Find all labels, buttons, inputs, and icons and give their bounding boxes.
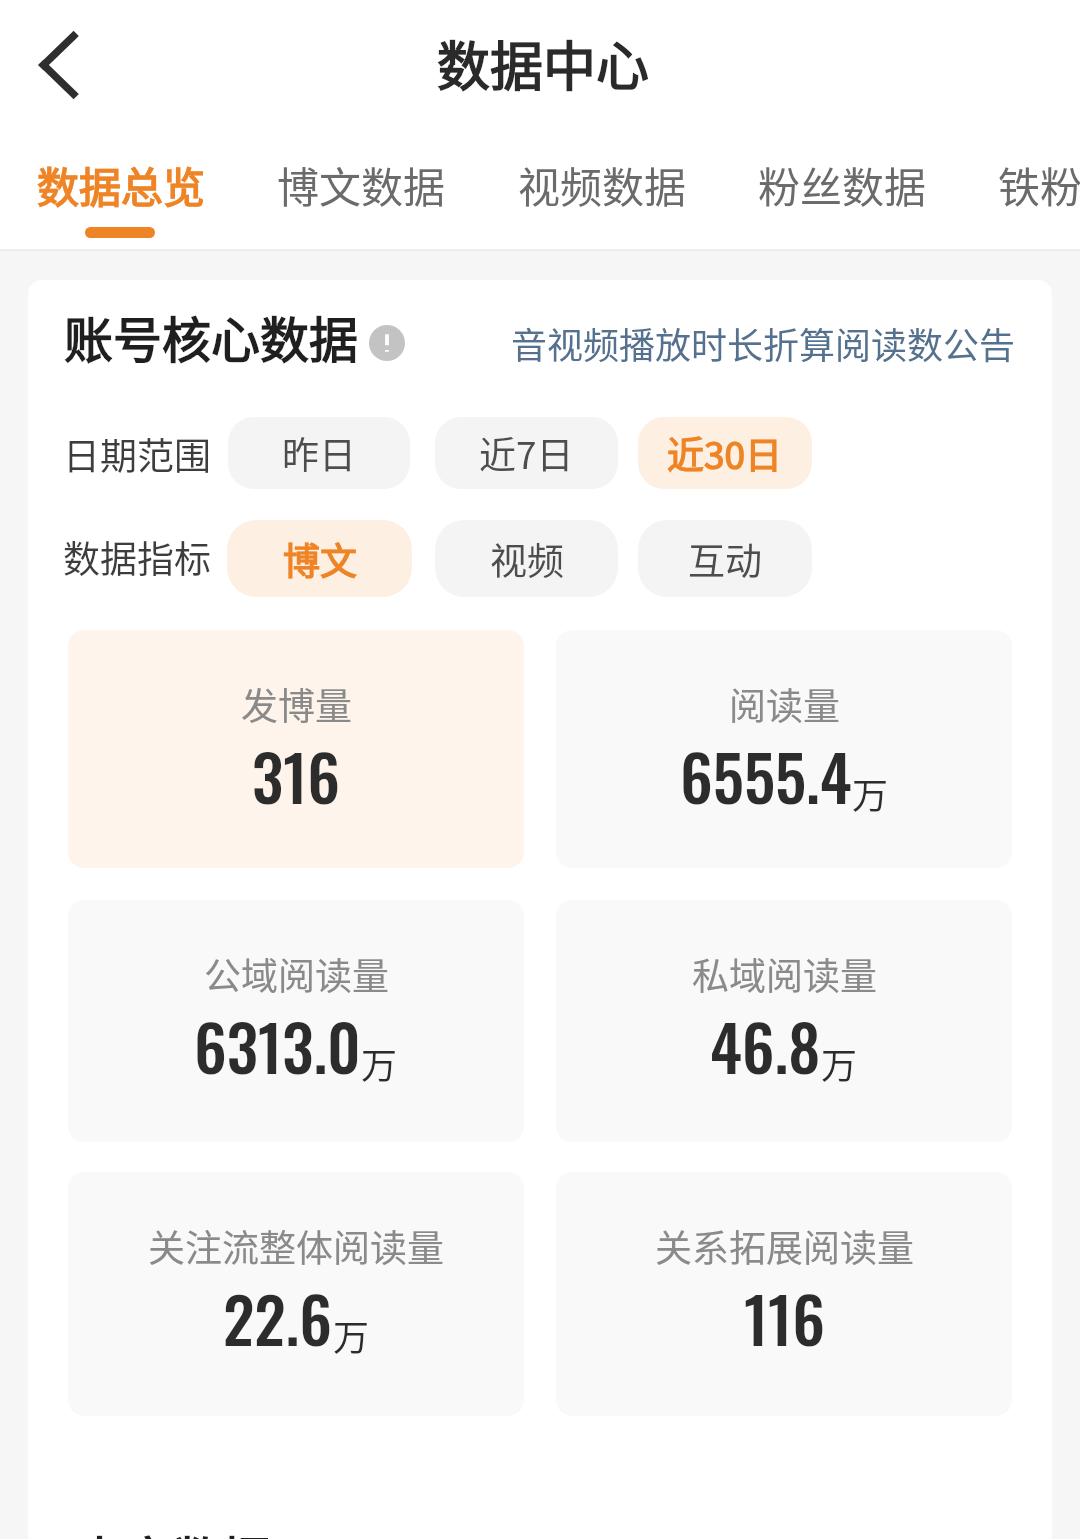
staticText: 互动: [688, 532, 762, 586]
button[interactable]: 视频数据: [518, 145, 686, 250]
button[interactable]: Back: [14, 16, 106, 116]
button[interactable]: 关注流整体阅读量: [68, 1172, 524, 1416]
staticText: 昨日: [282, 426, 356, 480]
staticText: 46.8: [710, 999, 821, 1092]
staticText: 万: [821, 1037, 858, 1089]
staticText: 视频数据: [518, 154, 686, 215]
staticText: 博文: [283, 532, 357, 586]
staticText: 22.6: [223, 1271, 333, 1364]
staticText: 公域阅读量: [204, 947, 389, 1001]
staticText: 账号核心数据: [64, 301, 359, 372]
staticText: 数据总览: [37, 154, 205, 215]
staticText: 近30日: [667, 426, 783, 480]
staticText: 视频: [490, 532, 564, 586]
button[interactable]: [420, 16, 660, 116]
button[interactable]: 私域阅读量: [556, 900, 1012, 1142]
staticText: 日期范围: [63, 427, 211, 481]
button[interactable]: 近7日: [435, 417, 618, 489]
button[interactable]: 博文: [227, 520, 412, 597]
staticText: 关注流整体阅读量: [148, 1219, 444, 1273]
staticText: 阅读量: [729, 677, 840, 731]
button[interactable]: 铁粉数据: [998, 145, 1080, 250]
button[interactable]: 互动: [638, 520, 812, 597]
staticText: 私域阅读量: [692, 947, 877, 1001]
staticText: 博文数据: [277, 154, 445, 215]
button[interactable]: 粉丝数据: [758, 145, 926, 250]
staticText: 6313.0: [194, 999, 361, 1092]
staticText: 铁粉数据: [998, 154, 1080, 215]
staticText: 关系拓展阅读量: [655, 1219, 914, 1273]
button[interactable]: 数据总览: [37, 145, 205, 250]
staticText: 内容数据: [75, 1521, 272, 1539]
staticText: 万: [361, 1037, 398, 1089]
staticText: 数据指标: [63, 530, 211, 584]
staticText: 发博量: [241, 677, 352, 731]
button[interactable]: 公域阅读量: [68, 900, 524, 1142]
staticText: 6555.4: [680, 729, 852, 822]
button[interactable]: 发博量: [68, 630, 524, 868]
button[interactable]: 阅读量: [556, 630, 1012, 868]
staticText: 万: [852, 767, 889, 819]
button[interactable]: More info: [369, 325, 405, 361]
staticText: 粉丝数据: [758, 154, 926, 215]
staticText: 近7日: [479, 426, 574, 480]
button[interactable]: 昨日: [228, 417, 410, 489]
staticText: 116: [744, 1271, 825, 1364]
button[interactable]: 近30日: [638, 417, 812, 489]
button[interactable]: 视频: [435, 520, 618, 597]
staticText: 316: [252, 729, 341, 822]
button[interactable]: 关系拓展阅读量: [556, 1172, 1012, 1416]
staticText: 数据中心: [437, 25, 649, 102]
button[interactable]: 博文数据: [277, 145, 445, 250]
button[interactable]: 音视频播放时长折算阅读数公告: [511, 317, 1016, 369]
staticText: 万: [333, 1309, 370, 1361]
